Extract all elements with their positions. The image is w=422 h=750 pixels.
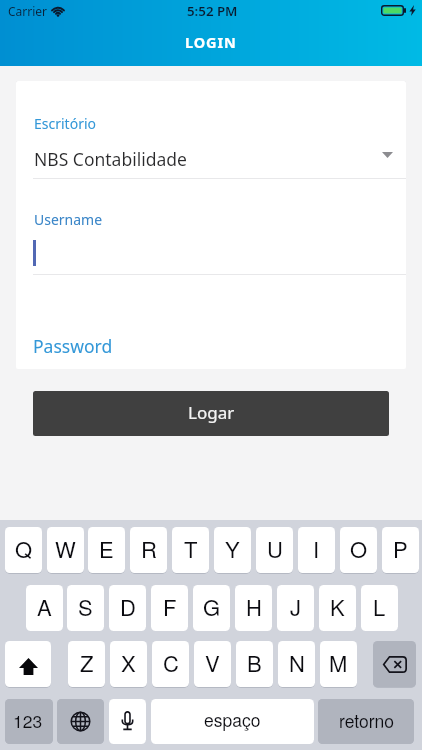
button[interactable]: Dictation: [109, 699, 146, 744]
staticText: Username: [34, 210, 103, 229]
button[interactable]: Next keyboard: [57, 699, 104, 744]
button[interactable]: Q: [5, 527, 42, 573]
staticText: J: [290, 591, 302, 623]
button[interactable]: N: [278, 641, 315, 687]
staticText: Q: [15, 533, 33, 565]
button[interactable]: J: [277, 585, 314, 631]
staticText: retorno: [339, 708, 394, 733]
staticText: W: [55, 533, 76, 565]
button[interactable]: Backspace: [373, 641, 416, 687]
staticText: LOGIN: [185, 32, 237, 52]
staticText: D: [120, 591, 136, 623]
staticText: N: [289, 647, 305, 679]
button[interactable]: Shift: [5, 641, 51, 687]
button[interactable]: O: [340, 527, 377, 573]
staticText: K: [330, 591, 345, 623]
button[interactable]: W: [47, 527, 84, 573]
button[interactable]: B: [236, 641, 273, 687]
button[interactable]: F: [151, 585, 188, 631]
button[interactable]: H: [235, 585, 272, 631]
staticText: Password: [33, 334, 113, 358]
staticText: Y: [225, 533, 240, 565]
staticText: Z: [80, 647, 94, 679]
staticText: C: [163, 647, 179, 679]
button[interactable]: I: [298, 527, 335, 573]
staticText: B: [247, 647, 262, 679]
staticText: V: [205, 647, 220, 679]
button[interactable]: M: [320, 641, 357, 687]
staticText: H: [246, 591, 262, 623]
button[interactable]: 123: [5, 699, 53, 744]
staticText: E: [99, 533, 114, 565]
button[interactable]: L: [361, 585, 398, 631]
button[interactable]: P: [382, 527, 419, 573]
staticText: 5:52 PM: [187, 2, 238, 20]
button[interactable]: X: [110, 641, 147, 687]
staticText: I: [313, 533, 320, 565]
staticText: T: [184, 533, 198, 565]
button[interactable]: Logar: [33, 391, 389, 436]
staticText: L: [373, 591, 386, 623]
staticText: F: [163, 591, 177, 623]
staticText: O: [350, 533, 368, 565]
button[interactable]: A: [26, 585, 63, 631]
staticText: U: [267, 533, 283, 565]
staticText: Logar: [188, 401, 235, 424]
button[interactable]: D: [109, 585, 146, 631]
button[interactable]: C: [152, 641, 189, 687]
button[interactable]: S: [67, 585, 104, 631]
button[interactable]: retorno: [318, 699, 414, 744]
staticText: NBS Contabilidade: [34, 147, 187, 171]
button[interactable]: R: [130, 527, 167, 573]
button[interactable]: U: [256, 527, 293, 573]
staticText: 123: [13, 708, 43, 733]
button[interactable]: Z: [68, 641, 105, 687]
staticText: Carrier: [8, 3, 48, 19]
staticText: P: [393, 533, 408, 565]
button[interactable]: V: [194, 641, 231, 687]
staticText: M: [329, 647, 348, 679]
staticText: Escritório: [34, 114, 96, 133]
button[interactable]: Y: [214, 527, 251, 573]
staticText: A: [37, 591, 52, 623]
button[interactable]: K: [319, 585, 356, 631]
staticText: S: [78, 591, 93, 623]
staticText: G: [203, 591, 221, 623]
button[interactable]: espaço: [151, 699, 314, 744]
staticText: espaço: [204, 707, 261, 732]
staticText: X: [121, 647, 136, 679]
button[interactable]: T: [172, 527, 209, 573]
button[interactable]: E: [88, 527, 125, 573]
button[interactable]: G: [193, 585, 230, 631]
staticText: R: [141, 533, 157, 565]
